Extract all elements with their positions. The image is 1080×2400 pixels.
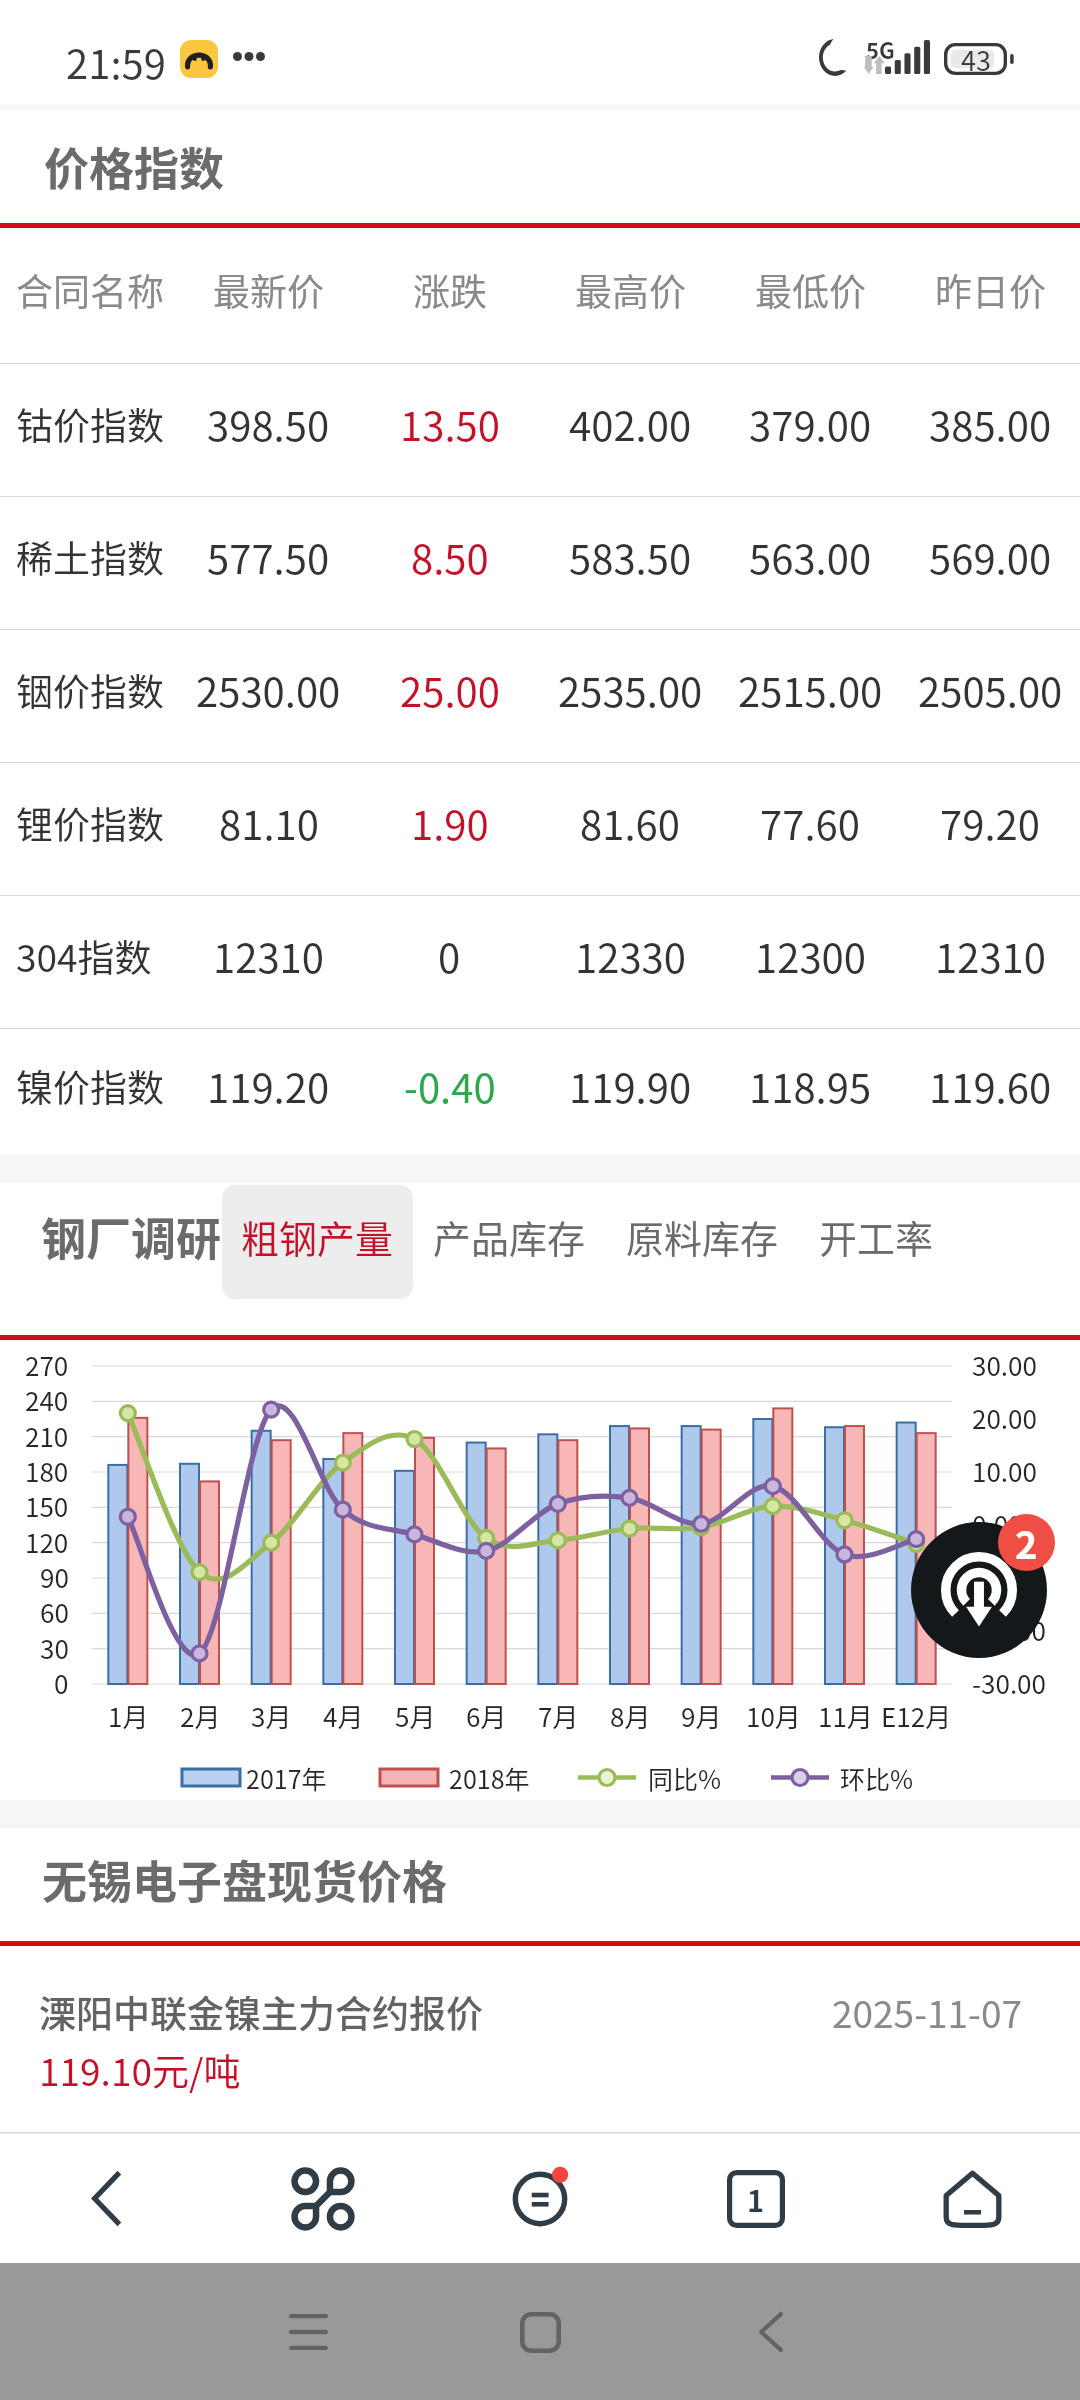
staticText: 81.10	[219, 794, 319, 852]
staticText: 最新价	[213, 263, 324, 317]
staticText: 150	[25, 1487, 69, 1525]
staticText: 12300	[755, 927, 866, 985]
button[interactable]: 返回	[55, 2134, 159, 2263]
staticText: 119.20	[207, 1057, 330, 1115]
staticText: 2	[1015, 1515, 1038, 1570]
staticText: 环比%	[840, 1760, 914, 1796]
button[interactable]: 原料库存	[606, 1179, 799, 1293]
staticText: 577.50	[207, 528, 330, 586]
button[interactable]: 返回	[726, 2290, 816, 2374]
staticText: 0	[54, 1664, 69, 1702]
staticText: 12310	[935, 927, 1046, 985]
button[interactable]: 消息	[488, 2134, 592, 2263]
staticText: 铟价指数	[16, 663, 164, 717]
staticText: 稀土指数	[16, 530, 164, 584]
button[interactable]: 应用	[271, 2134, 375, 2263]
staticText: 563.00	[749, 528, 872, 586]
staticText: 2018年	[449, 1760, 530, 1796]
staticText: 90	[40, 1558, 69, 1596]
staticText: 10月	[746, 1697, 801, 1735]
staticText: 270	[25, 1346, 69, 1384]
button[interactable]: 铟价指数	[0, 630, 1080, 762]
button[interactable]: 粗钢产量	[222, 1185, 413, 1299]
staticText: 77.60	[760, 794, 860, 852]
button[interactable]: 锂价指数	[0, 763, 1080, 895]
staticText: 9月	[681, 1697, 722, 1735]
staticText: 210	[25, 1417, 69, 1455]
staticText: 昨日价	[935, 263, 1046, 317]
staticText: 7月	[538, 1697, 579, 1735]
staticText: 20.00	[972, 1399, 1037, 1437]
staticText: 304指数	[16, 929, 152, 983]
staticText: -10.00	[972, 1558, 1046, 1596]
staticText: 3月	[251, 1697, 292, 1735]
staticText: 118.95	[749, 1057, 872, 1115]
button[interactable]: 最近任务	[263, 2290, 353, 2374]
staticText: 12310	[213, 927, 324, 985]
staticText: 同比%	[648, 1760, 722, 1796]
button[interactable]: 溧阳中联金镍主力合约报价	[0, 1946, 1080, 2132]
staticText: 溧阳中联金镍主力合约报价	[39, 1985, 483, 2039]
staticText: 583.50	[569, 528, 692, 586]
staticText: 最低价	[755, 263, 866, 317]
staticText: 合同名称	[16, 263, 164, 317]
button[interactable]: 稀土指数	[0, 497, 1080, 629]
staticText: 涨跌	[413, 263, 487, 317]
staticText: -0.40	[404, 1057, 496, 1115]
staticText: 2515.00	[738, 661, 883, 719]
button[interactable]: 开工率	[799, 1179, 954, 1293]
staticText: 2505.00	[918, 661, 1063, 719]
staticText: 120	[25, 1523, 69, 1561]
staticText: 398.50	[207, 395, 330, 453]
staticText: 无锡电子盘现货价格	[42, 1847, 448, 1912]
staticText: 569.00	[929, 528, 1052, 586]
staticText: 8月	[610, 1697, 651, 1735]
staticText: 240	[25, 1381, 69, 1419]
staticText: 1月	[108, 1697, 149, 1735]
staticText: 2017年	[246, 1760, 327, 1796]
button[interactable]: 钴价指数	[0, 364, 1080, 496]
button[interactable]: 合同名称	[0, 228, 1080, 363]
staticText: 43	[961, 40, 991, 72]
staticText: 0.00	[972, 1505, 1023, 1543]
button[interactable]: 镍价指数	[0, 1029, 1080, 1155]
staticText: 30.00	[972, 1346, 1037, 1384]
staticText: 119.60	[929, 1057, 1052, 1115]
staticText: 2530.00	[196, 661, 341, 719]
staticText: -30.00	[972, 1664, 1046, 1702]
staticText: 粗钢产量	[241, 1209, 394, 1264]
button[interactable]: 主页	[920, 2134, 1024, 2263]
staticText: 产品库存	[433, 1209, 586, 1264]
staticText: 119.10元/吨	[39, 2043, 241, 2097]
staticText: 11月	[818, 1697, 873, 1735]
staticText: 81.60	[580, 794, 680, 852]
staticText: 60	[40, 1593, 69, 1631]
staticText: 1	[747, 2178, 765, 2220]
staticText: 180	[25, 1452, 69, 1490]
staticText: 钴价指数	[16, 397, 164, 451]
staticText: 30	[40, 1629, 69, 1667]
staticText: 79.20	[940, 794, 1040, 852]
staticText: 价格指数	[44, 134, 225, 199]
staticText: 379.00	[749, 395, 872, 453]
staticText: 钢厂调研	[41, 1204, 222, 1269]
staticText: 开工率	[819, 1209, 934, 1264]
staticText: 10.00	[972, 1452, 1037, 1490]
staticText: 119.90	[569, 1057, 692, 1115]
staticText: 21:59	[66, 33, 166, 91]
staticText: 0	[438, 927, 461, 985]
button[interactable]: 304指数	[0, 896, 1080, 1028]
staticText: 2025-11-07	[832, 1985, 1022, 2039]
staticText: 4月	[323, 1697, 364, 1735]
button[interactable]: 窗口	[704, 2134, 808, 2263]
staticText: 385.00	[929, 395, 1052, 453]
staticText: 镍价指数	[16, 1059, 164, 1113]
button[interactable]: 主屏幕	[495, 2290, 585, 2374]
button[interactable]: 产品库存	[413, 1179, 606, 1293]
staticText: 5G	[866, 33, 895, 65]
staticText: 2535.00	[558, 661, 703, 719]
staticText: 5月	[395, 1697, 436, 1735]
button[interactable]: 下载	[911, 1522, 1047, 1658]
staticText: 1.90	[411, 794, 489, 852]
staticText: 6月	[466, 1697, 507, 1735]
